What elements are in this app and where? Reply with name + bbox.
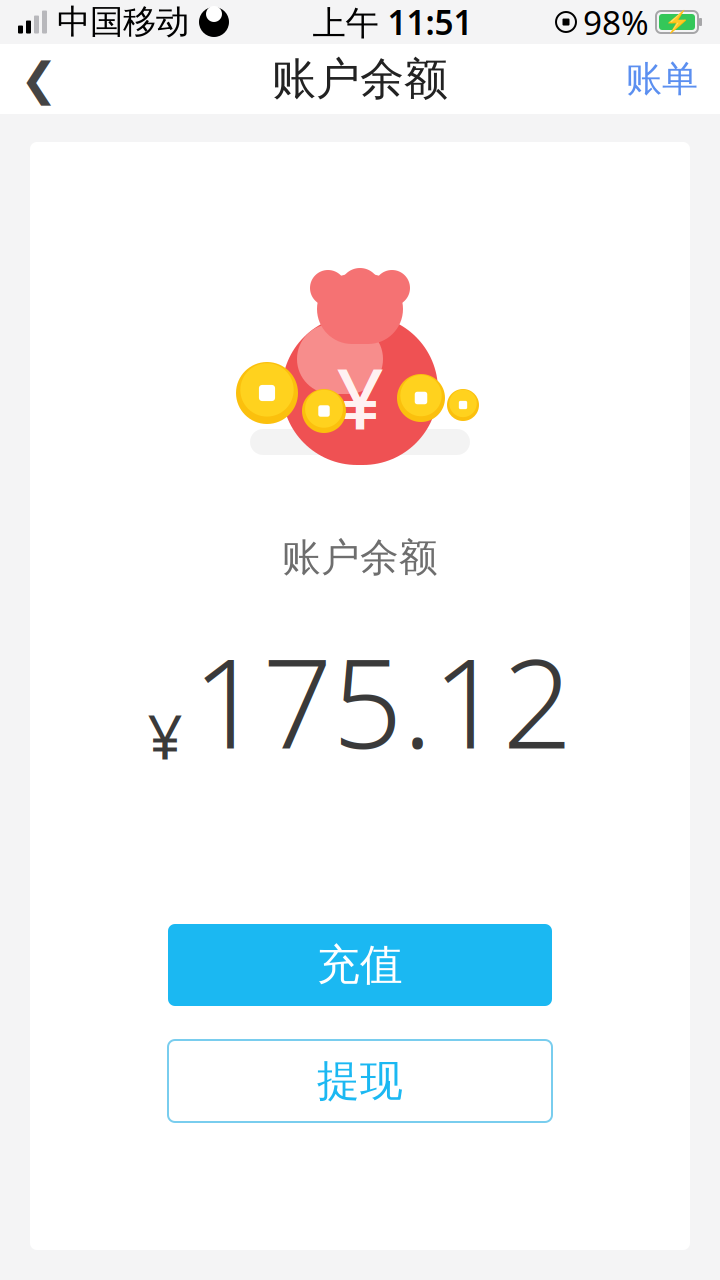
staticText: 账户余额 xyxy=(272,52,448,106)
staticText: ❮ xyxy=(20,53,58,105)
button[interactable]: 提现 xyxy=(168,1040,552,1122)
staticText: 提现 xyxy=(317,1055,403,1107)
button[interactable]: Back xyxy=(0,44,78,114)
staticText: 中国移动 xyxy=(57,1,189,42)
staticText: ¥ xyxy=(147,695,182,776)
staticText: 175.12 xyxy=(192,619,572,782)
staticText: 账户余额 xyxy=(282,534,438,581)
button[interactable]: 账单 xyxy=(604,44,720,114)
staticText: 充值 xyxy=(317,939,403,991)
button[interactable]: 充值 xyxy=(168,924,552,1006)
staticText: 98% xyxy=(583,0,649,44)
staticText: ¥ xyxy=(336,342,383,452)
staticText: ⚡ xyxy=(663,10,690,34)
staticText: 上午 11:51 xyxy=(312,0,472,44)
staticText: 账单 xyxy=(626,57,698,101)
